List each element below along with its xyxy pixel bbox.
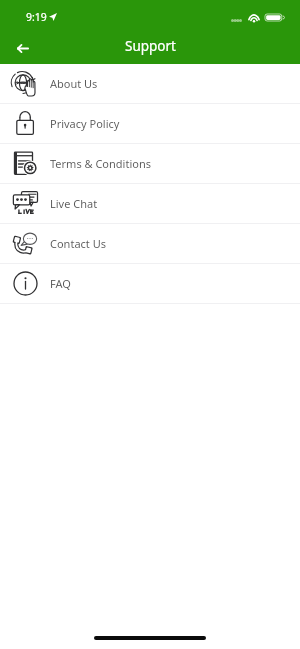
- button[interactable]: Contact Us: [0, 224, 300, 264]
- staticText: Contact Us: [50, 236, 106, 251]
- button[interactable]: FAQ: [0, 264, 300, 304]
- staticText: Live Chat: [50, 196, 98, 211]
- button[interactable]: Terms & Conditions: [0, 144, 300, 184]
- button[interactable]: Live Chat: [0, 184, 300, 224]
- staticText: Support: [125, 37, 176, 55]
- button[interactable]: Privacy Policy: [0, 104, 300, 144]
- staticText: Privacy Policy: [50, 116, 120, 131]
- button[interactable]: About Us: [0, 64, 300, 104]
- staticText: 9:19: [26, 10, 47, 24]
- staticText: FAQ: [50, 276, 71, 291]
- button[interactable]: Back: [5, 32, 40, 64]
- staticText: Terms & Conditions: [50, 156, 151, 171]
- staticText: About Us: [50, 76, 98, 91]
